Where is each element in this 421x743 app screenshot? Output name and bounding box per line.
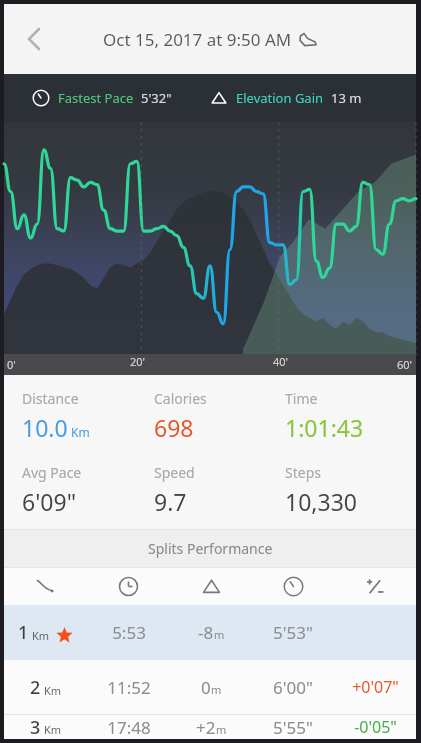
staticText: Calories [154,389,207,408]
staticText: 11:52 [107,676,151,699]
staticText: 10,330 [285,486,357,517]
staticText: 5'55" [273,716,313,739]
staticText: Km [44,683,62,698]
staticText: Time [285,389,318,408]
staticText: +0'07" [352,676,399,698]
staticText: 40' [273,354,289,369]
staticText: 9.7 [154,486,187,517]
button[interactable]: 1 [4,605,416,659]
staticText: -0'05" [354,716,397,738]
staticText: Splits Performance [148,539,273,558]
staticText: m [214,627,225,642]
staticText: Distance [22,389,79,408]
staticText: Oct 15, 2017 at 9:50 AM [103,28,292,51]
staticText: Km [32,628,50,643]
button[interactable]: Back [12,17,56,61]
staticText: Avg Pace [22,463,82,482]
staticText: 1 [18,620,29,645]
staticText: 5'53" [273,621,313,644]
staticText: m [211,682,222,697]
staticText: 17:48 [107,716,151,739]
staticText: Elevation Gain [236,89,324,107]
staticText: Km [71,424,90,440]
staticText: 0 [201,676,211,699]
staticText: 6'00" [273,676,313,699]
staticText: Km [44,722,62,737]
staticText: 3 [30,715,41,739]
staticText: -8 [198,621,214,644]
staticText: 60' [397,357,413,372]
staticText: 5:53 [112,621,146,644]
staticText: m [216,722,227,737]
staticText: 10.0 [22,412,68,443]
staticText: Speed [154,463,195,482]
staticText: Steps [285,463,321,482]
staticText: 6'09" [22,486,77,517]
staticText: 2 [30,675,41,700]
button[interactable]: 2 [4,660,416,714]
staticText: 1:01:43 [285,412,364,443]
staticText: 20' [130,354,146,369]
staticText: 698 [154,412,194,443]
staticText: 0' [7,357,16,372]
staticText: Fastest Pace [58,89,134,107]
staticText: 13 m [331,89,362,107]
staticText: +2 [196,716,216,739]
staticText: 5'32" [141,89,172,107]
button[interactable]: 3 [4,715,416,739]
